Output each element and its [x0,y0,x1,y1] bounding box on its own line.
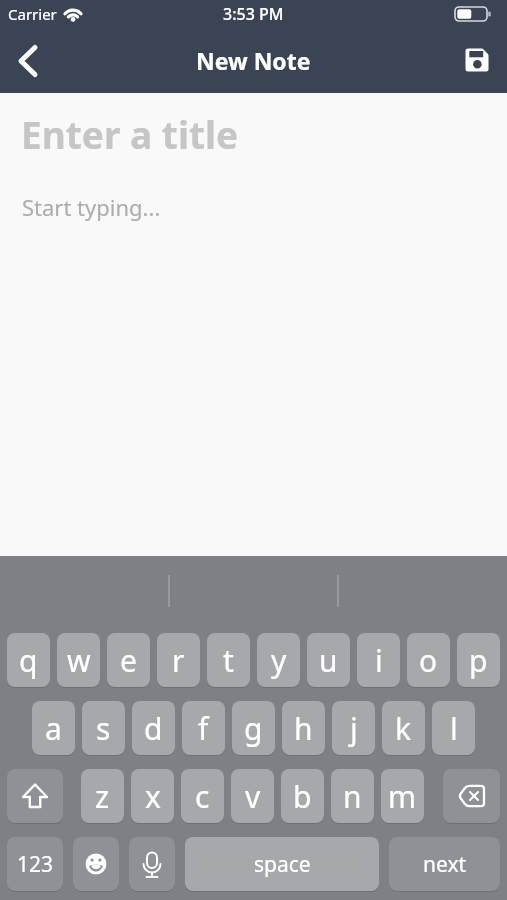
button[interactable]: z [81,769,124,823]
staticText: a [45,708,62,749]
staticText: f [198,708,209,749]
button[interactable]: c [181,769,224,823]
staticText: r [172,640,185,681]
staticText: m [388,776,417,817]
staticText: y [271,640,287,681]
staticText: l [450,708,458,749]
staticText: i [375,640,383,681]
button[interactable]: Start typing... [22,192,507,222]
staticText: b [293,776,312,817]
staticText: x [145,776,161,817]
button[interactable]: y [257,633,300,687]
button[interactable]: space [185,837,379,891]
staticText: k [395,708,412,749]
button[interactable]: p [457,633,500,687]
button[interactable]: v [231,769,274,823]
button[interactable] [129,837,175,891]
staticText: t [223,640,234,681]
button[interactable]: Enter a title [21,109,507,159]
button[interactable]: m [381,769,424,823]
staticText: Carrier [8,4,57,24]
staticText: q [19,640,38,681]
button[interactable]: u [307,633,350,687]
staticText: e [120,640,137,681]
button[interactable]: x [131,769,174,823]
button[interactable] [73,837,119,891]
staticText: c [195,776,210,817]
button[interactable]: g [232,701,275,755]
button[interactable]: k [382,701,425,755]
staticText: u [319,640,338,681]
button[interactable]: s [82,701,125,755]
button[interactable]: i [357,633,400,687]
staticText: p [469,640,488,681]
button[interactable]: t [207,633,250,687]
staticText: n [343,776,362,817]
button[interactable] [10,43,46,79]
staticText: v [245,776,261,817]
button[interactable] [443,769,500,823]
staticText: z [95,776,110,817]
button[interactable]: 123 [7,837,63,891]
staticText: h [294,708,313,749]
button[interactable]: l [432,701,475,755]
staticText: j [350,708,358,749]
button[interactable] [7,769,63,823]
staticText: New Note [196,45,311,76]
button[interactable]: f [182,701,225,755]
staticText: 123 [17,850,54,879]
staticText: 3:53 PM [223,3,284,25]
staticText: s [96,708,111,749]
button[interactable]: d [132,701,175,755]
staticText: space [254,850,311,879]
button[interactable]: r [157,633,200,687]
button[interactable] [463,46,493,76]
staticText: next [423,850,467,879]
button[interactable]: h [282,701,325,755]
button[interactable]: next [389,837,500,891]
button[interactable]: b [281,769,324,823]
button[interactable]: j [332,701,375,755]
button[interactable]: w [57,633,100,687]
button[interactable]: n [331,769,374,823]
button[interactable]: q [7,633,50,687]
button[interactable]: e [107,633,150,687]
staticText: g [244,708,263,749]
staticText: w [67,640,91,681]
staticText: o [419,640,438,681]
staticText: d [144,708,163,749]
button[interactable]: o [407,633,450,687]
button[interactable]: a [32,701,75,755]
